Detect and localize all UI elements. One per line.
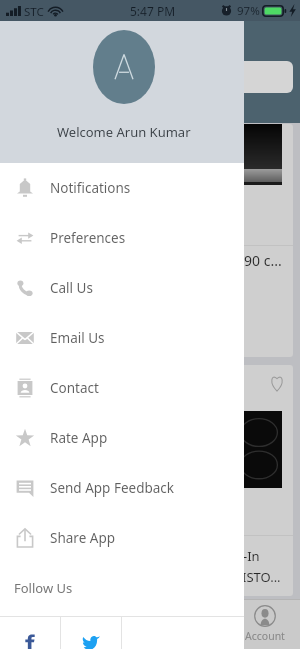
button[interactable]: 90 c... <box>190 124 293 357</box>
button[interactable]: Facebook <box>0 617 60 649</box>
staticText: ISTO... <box>242 568 281 586</box>
button[interactable]: Twitter <box>61 617 121 649</box>
staticText: 90 c... <box>244 251 282 270</box>
button[interactable]: Notifications <box>0 163 244 213</box>
button[interactable]: Rate App <box>0 413 244 463</box>
staticText: 5:47 PM <box>130 3 176 19</box>
button[interactable]: Send App Feedback <box>0 463 244 513</box>
button[interactable]: Email Us <box>0 313 244 363</box>
staticText: -In <box>243 547 260 565</box>
staticText: Call Us <box>50 279 93 297</box>
button[interactable]: Account <box>240 599 290 649</box>
button[interactable]: Call Us <box>0 263 244 313</box>
button[interactable]: Preferences <box>0 213 244 263</box>
staticText: Preferences <box>50 229 126 247</box>
staticText: Welcome Arun Kumar <box>57 123 191 141</box>
staticText: Rate App <box>50 429 108 447</box>
staticText: STC <box>24 4 44 20</box>
staticText: Share App <box>50 529 115 547</box>
staticText: Email Us <box>50 329 105 347</box>
staticText: Send App Feedback <box>50 479 175 497</box>
staticText: Contact <box>50 379 99 397</box>
staticText: Follow Us <box>14 579 73 597</box>
button[interactable]: Contact <box>0 363 244 413</box>
other: Favourite <box>270 373 284 392</box>
button[interactable]: Search <box>60 61 293 93</box>
staticText: Notifications <box>50 179 131 197</box>
button[interactable]: Favourite <box>190 365 293 596</box>
staticText: 97% <box>237 3 260 19</box>
button[interactable]: Share App <box>0 513 244 563</box>
staticText: Account <box>245 629 285 643</box>
